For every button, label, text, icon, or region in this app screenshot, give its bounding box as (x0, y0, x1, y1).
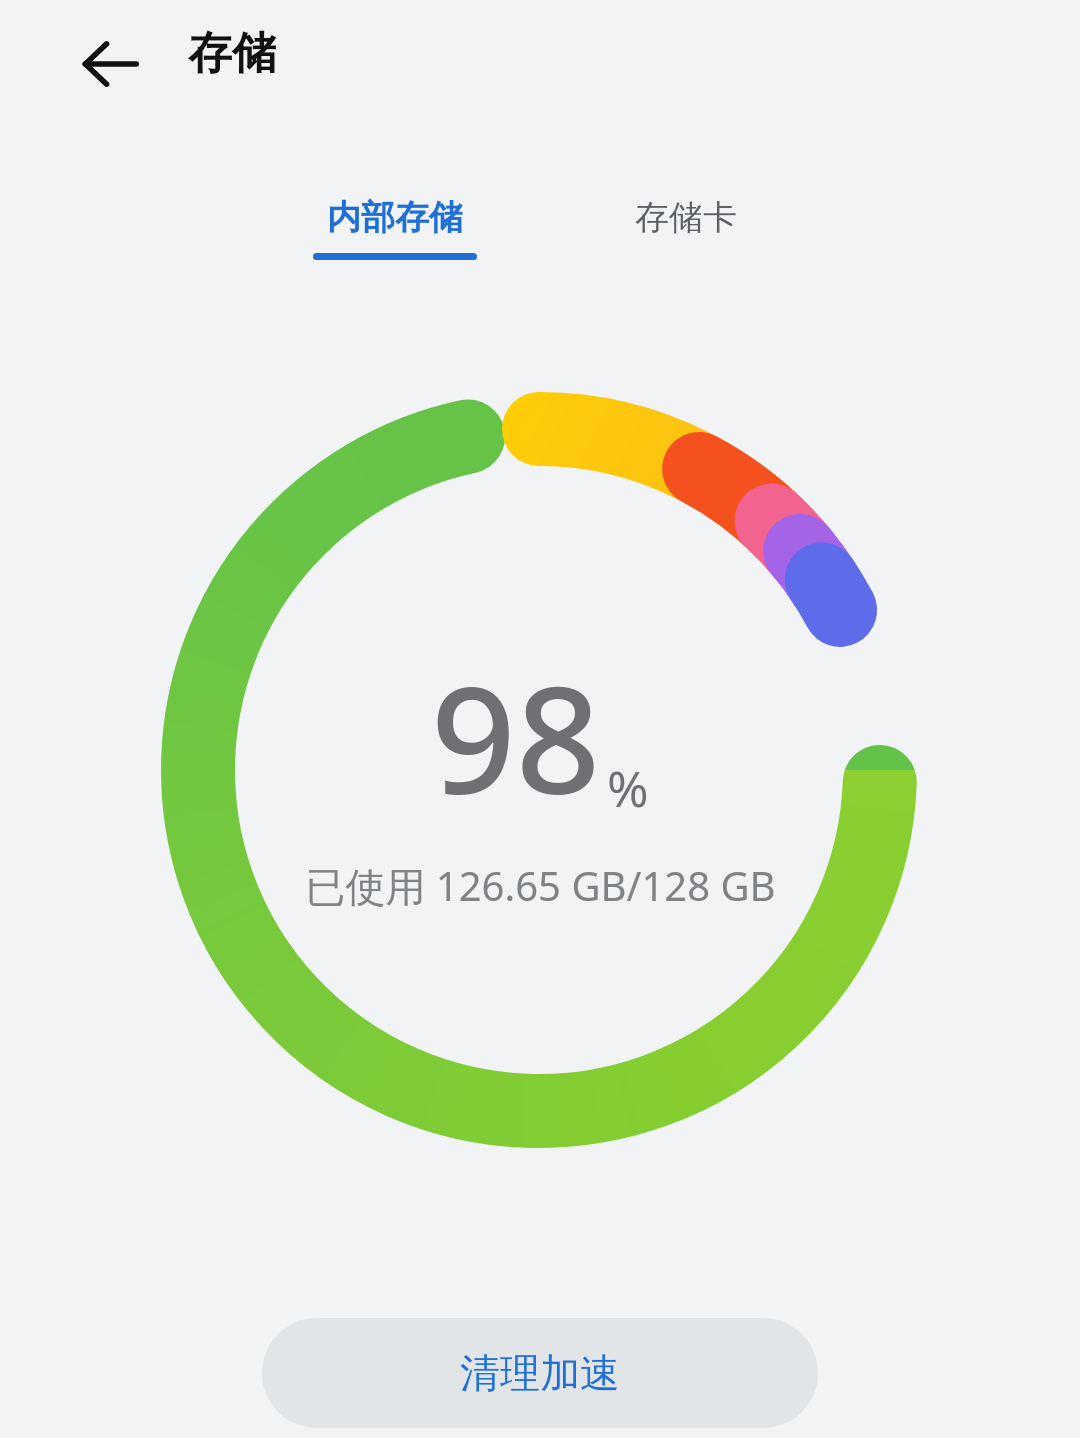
staticText: 98 (431, 636, 601, 838)
staticText: 清理加速 (460, 1348, 620, 1398)
staticText: 已使用 126.65 GB/128 GB (305, 858, 776, 913)
staticText: % (607, 754, 649, 822)
staticText: 存储卡 (635, 196, 737, 239)
button[interactable]: 清理加速 (262, 1318, 818, 1428)
button[interactable]: Back (64, 18, 156, 110)
staticText: 内部存储 (327, 196, 463, 239)
button[interactable]: 存储卡 (575, 196, 797, 239)
button[interactable]: 内部存储 (283, 196, 507, 260)
staticText: 存储 (188, 26, 276, 81)
